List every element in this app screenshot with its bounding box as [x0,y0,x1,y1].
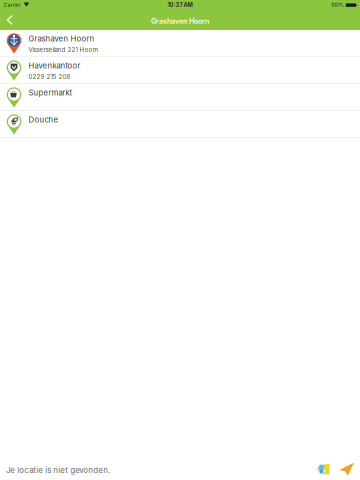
button[interactable]: Havenkantoor [0,57,360,84]
staticText: 100% [331,2,344,8]
staticText: Grashaven Hoorn [28,34,94,43]
button[interactable]: Grashaven Hoorn [0,30,360,57]
staticText: Douche [28,115,58,124]
staticText: Havenkantoor [28,61,80,70]
button[interactable]: Back [0,10,19,30]
staticText: Supermarkt [28,88,72,97]
button[interactable]: Center on my location [330,454,360,476]
button[interactable]: Douche [0,111,360,138]
button[interactable]: Street view [315,454,330,476]
staticText: 10:37 AM [167,1,192,8]
staticText: Carrier [4,2,21,8]
staticText: Grashaven Hoorn [151,17,209,25]
staticText: Visserseiland 221 Hoorn [28,46,98,53]
staticText: Je locatie is niet gevonden. [6,465,110,475]
staticText: 0229 215 208 [28,73,70,80]
button[interactable]: Supermarkt [0,84,360,111]
